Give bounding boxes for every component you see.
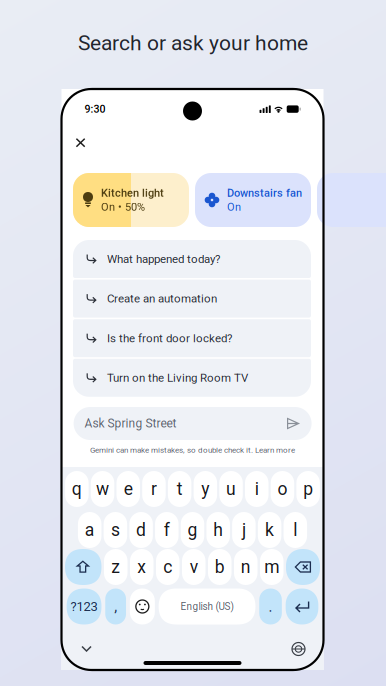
button[interactable]: l: [283, 512, 307, 548]
staticText: a: [85, 520, 95, 540]
staticText: On: [227, 200, 241, 213]
staticText: k: [265, 520, 274, 540]
button[interactable]: i: [245, 471, 268, 507]
staticText: z: [111, 557, 120, 577]
button[interactable]: Turn on the Living Room TV: [73, 359, 311, 397]
staticText: j: [242, 520, 246, 540]
button[interactable]: u: [219, 471, 243, 507]
staticText: On • 50%: [101, 200, 145, 213]
staticText: Downstairs fan: [227, 187, 302, 199]
button[interactable]: f: [155, 512, 179, 548]
button[interactable]: Shift: [65, 549, 101, 585]
staticText: p: [303, 479, 313, 499]
button[interactable]: .: [259, 588, 282, 624]
button[interactable]: h: [206, 512, 230, 548]
button[interactable]: r: [142, 471, 166, 507]
button[interactable]: c: [156, 549, 179, 585]
button[interactable]: o: [271, 471, 294, 507]
staticText: u: [226, 479, 236, 499]
staticText: Search or ask your home: [78, 31, 308, 55]
button[interactable]: s: [104, 512, 127, 548]
button[interactable]: a: [78, 512, 101, 548]
staticText: i: [255, 479, 259, 499]
button[interactable]: Hide keyboard: [73, 639, 99, 659]
staticText: Is the front door locked?: [107, 331, 232, 345]
button[interactable]: k: [258, 512, 281, 548]
button[interactable]: z: [104, 549, 127, 585]
button[interactable]: Change language: [285, 639, 311, 659]
button[interactable]: Backspace: [286, 549, 320, 585]
staticText: g: [187, 520, 197, 540]
button[interactable]: English (US): [159, 588, 255, 624]
staticText: h: [213, 520, 223, 540]
button[interactable]: What happened today?: [73, 240, 311, 278]
staticText: Gemini can make mistakes, so double chec…: [90, 445, 255, 455]
button[interactable]: w: [91, 471, 114, 507]
button[interactable]: x: [130, 549, 153, 585]
staticText: English (US): [181, 601, 234, 612]
staticText: 9:30: [84, 103, 105, 115]
staticText: q: [72, 479, 82, 499]
staticText: y: [201, 479, 209, 499]
staticText: r: [151, 479, 157, 499]
staticText: n: [241, 557, 251, 577]
button[interactable]: g: [181, 512, 204, 548]
button[interactable]: v: [182, 549, 205, 585]
button[interactable]: p: [296, 471, 320, 507]
button[interactable]: n: [234, 549, 257, 585]
button[interactable]: Is the front door locked?: [73, 319, 311, 357]
staticText: ,: [114, 598, 117, 615]
staticText: s: [111, 520, 120, 540]
staticText: Create an automation: [107, 292, 217, 305]
button[interactable]: Emoji: [130, 588, 155, 624]
staticText: e: [124, 479, 133, 499]
button[interactable]: m: [260, 549, 283, 585]
button[interactable]: ,: [105, 588, 126, 624]
button[interactable]: q: [65, 471, 89, 507]
staticText: c: [163, 557, 172, 577]
staticText: o: [277, 479, 287, 499]
button[interactable]: Kitchen light: [73, 173, 189, 227]
staticText: Kitchen light: [101, 187, 164, 199]
button[interactable]: Return: [286, 588, 318, 624]
staticText: ?123: [71, 599, 98, 614]
button[interactable]: Close: [68, 130, 92, 154]
button[interactable]: e: [116, 471, 140, 507]
button[interactable]: Ask Spring Street: [74, 407, 312, 440]
button[interactable]: y: [194, 471, 217, 507]
staticText: v: [190, 557, 198, 577]
staticText: b: [215, 557, 225, 577]
staticText: m: [264, 557, 279, 577]
staticText: t: [177, 479, 183, 499]
button[interactable]: t: [168, 471, 191, 507]
button[interactable]: d: [129, 512, 153, 548]
staticText: w: [96, 479, 109, 499]
staticText: d: [136, 520, 146, 540]
staticText: Turn on the Living Room TV: [107, 371, 248, 385]
staticText: l: [293, 520, 297, 540]
staticText: .: [269, 598, 273, 615]
button[interactable]: Downstairs fan: [195, 173, 311, 227]
staticText: Learn more: [255, 445, 295, 455]
button[interactable]: ?123: [67, 588, 101, 624]
button[interactable]: Create an automation: [73, 280, 311, 318]
staticText: f: [164, 520, 170, 540]
staticText: Ask Spring Street: [85, 416, 177, 431]
staticText: What happened today?: [107, 252, 220, 266]
button[interactable]: b: [208, 549, 231, 585]
button[interactable]: j: [232, 512, 256, 548]
staticText: x: [137, 557, 146, 577]
